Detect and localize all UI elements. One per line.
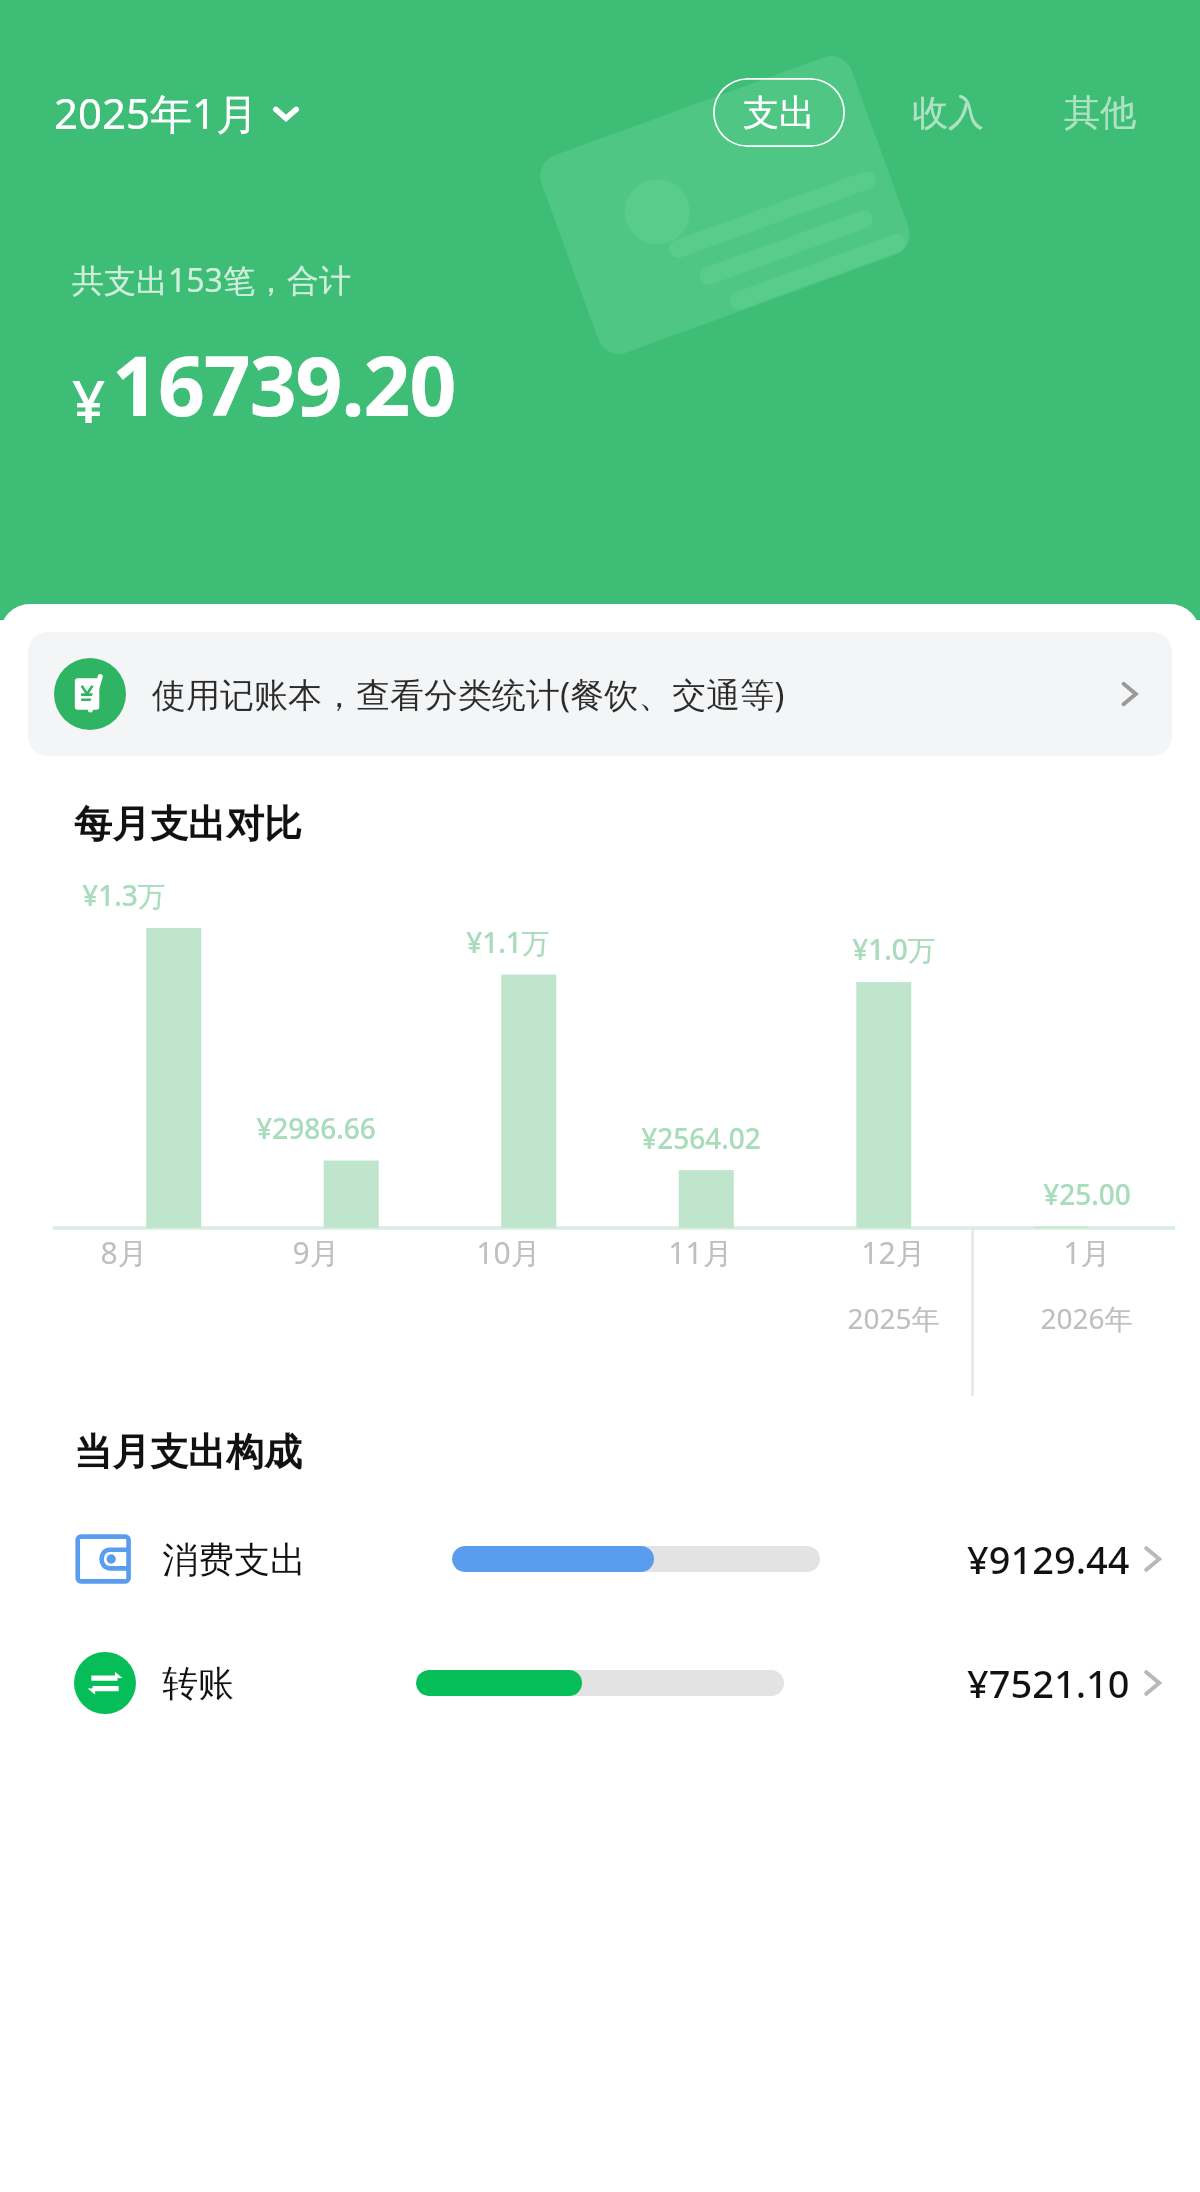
staticText: 2025年1月 (54, 84, 259, 141)
staticText: ¥1.1万 (466, 923, 550, 961)
staticText: 1月 (1063, 1232, 1111, 1273)
staticText: ¥25.00 (1043, 1175, 1131, 1213)
staticText: 11月 (668, 1232, 733, 1273)
staticText: 转账 (162, 1661, 234, 1706)
button[interactable]: 消费支出 (0, 1528, 1200, 1590)
staticText: 收入 (912, 90, 984, 135)
button[interactable]: 转账 (0, 1652, 1200, 1714)
staticText: 使用记账本，查看分类统计(餐饮、交通等) (152, 671, 1102, 717)
staticText: 12月 (861, 1232, 926, 1273)
staticText: 支出 (743, 90, 815, 135)
staticText: 当月支出构成 (74, 1428, 302, 1476)
staticText: ¥1.3万 (82, 876, 166, 914)
staticText: 共支出153笔，合计 (72, 258, 351, 302)
button[interactable]: 收入 (902, 78, 994, 147)
staticText: 每月支出对比 (74, 800, 302, 848)
staticText: ¥ (72, 361, 106, 440)
button[interactable]: 2025年1月 (54, 78, 301, 147)
staticText: 8月 (100, 1232, 148, 1273)
staticText: 10月 (476, 1232, 541, 1273)
staticText: 其他 (1064, 90, 1136, 135)
button[interactable]: 其他 (1054, 78, 1146, 147)
staticText: 消费支出 (162, 1537, 306, 1582)
button[interactable]: 支出 (712, 78, 846, 147)
staticText: ¥1.0万 (852, 930, 936, 968)
staticText: ¥7521.10 (967, 1657, 1130, 1709)
button[interactable]: 使用记账本，查看分类统计(餐饮、交通等) (28, 632, 1172, 756)
staticText: 2025年 (847, 1299, 940, 1337)
staticText: 16739.20 (112, 328, 456, 440)
staticText: ¥9129.44 (967, 1533, 1130, 1585)
staticText: 9月 (292, 1232, 340, 1273)
staticText: ¥2986.66 (256, 1109, 376, 1147)
staticText: ¥2564.02 (641, 1119, 761, 1157)
staticText: 2026年 (1040, 1299, 1133, 1337)
